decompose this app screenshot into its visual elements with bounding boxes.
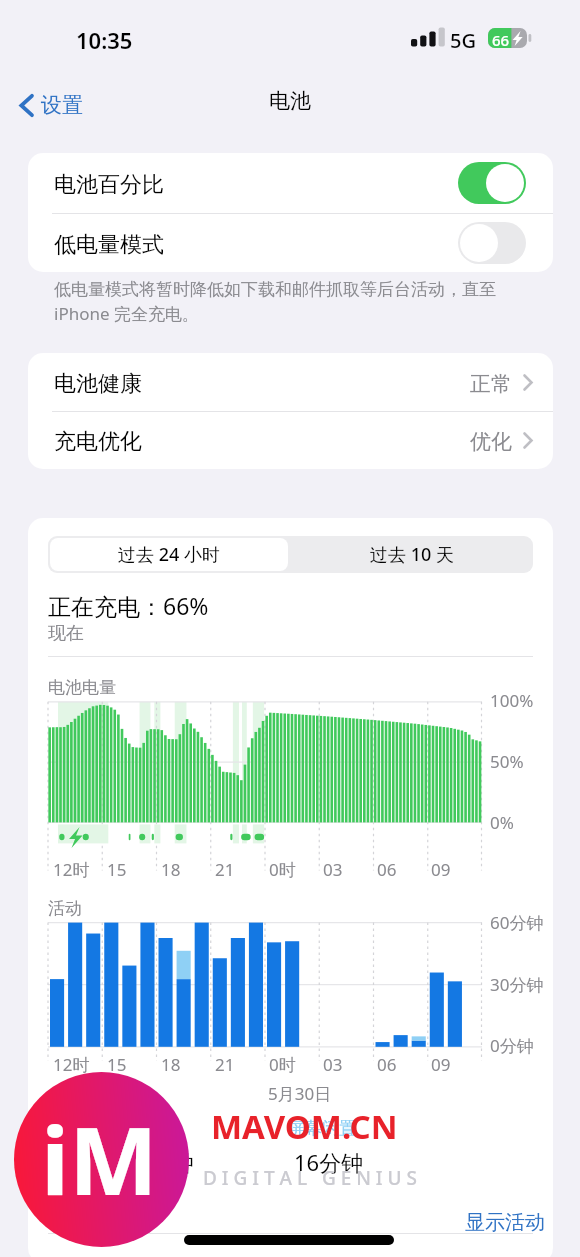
staticText: 屏幕使用 xyxy=(94,1118,162,1139)
staticText: 06 xyxy=(377,858,397,881)
button[interactable]: 过去 10 天 xyxy=(290,536,533,573)
staticText: 电池 xyxy=(269,88,311,114)
staticText: 低电量模式 xyxy=(54,231,164,259)
staticText: 06 xyxy=(377,1053,397,1076)
staticText: 电池健康 xyxy=(54,370,142,398)
staticText: 屏幕闲置 xyxy=(288,1118,356,1139)
button[interactable]: 过去 24 小时 xyxy=(50,538,288,571)
staticText: 09 xyxy=(431,858,451,881)
staticText: 66 xyxy=(492,30,510,50)
staticText: 18 xyxy=(161,858,181,881)
staticText: D I G I T A L G E N I U S xyxy=(203,1165,417,1191)
staticText: 活动 xyxy=(48,898,82,919)
button[interactable]: 低电量模式 xyxy=(28,213,553,272)
staticText: 16分钟 xyxy=(294,1147,364,1177)
staticText: 50% xyxy=(490,750,524,773)
staticText: 21 xyxy=(215,1053,235,1076)
staticText: 03 xyxy=(323,858,343,881)
staticText: 0时 xyxy=(269,1053,296,1076)
staticText: 12时 xyxy=(53,1053,90,1076)
button[interactable]: 电池百分比 xyxy=(28,153,553,212)
staticText: 100% xyxy=(490,689,534,712)
staticText: 正在充电：66% xyxy=(48,590,209,621)
staticText: 0分钟 xyxy=(490,1034,534,1057)
staticText: 5月30日 xyxy=(268,1082,332,1105)
staticText: 1小时28分钟 xyxy=(68,1147,194,1177)
button[interactable]: 显示活动 xyxy=(457,1202,553,1243)
staticText: 充电优化 xyxy=(54,428,142,456)
staticText: 正常 xyxy=(470,371,512,397)
staticText: 电池百分比 xyxy=(54,171,164,199)
staticText: 低电量模式将暂时降低如下载和邮件抓取等后台活动，直至 iPhone 完全充电。 xyxy=(54,279,496,325)
staticText: 15 xyxy=(107,858,127,881)
button[interactable]: 充电优化 xyxy=(28,411,553,469)
staticText: 09 xyxy=(431,1053,451,1076)
staticText: 60分钟 xyxy=(490,911,544,934)
staticText: iM xyxy=(41,1095,158,1223)
staticText: 优化 xyxy=(470,429,512,455)
staticText: 显示活动 xyxy=(465,1210,545,1235)
staticText: 设置 xyxy=(41,92,83,118)
staticText: 30分钟 xyxy=(490,973,544,996)
staticText: 现在 xyxy=(48,622,84,645)
staticText: 过去 24 小时 xyxy=(118,542,220,567)
staticText: 12时 xyxy=(53,858,90,881)
staticText: 15 xyxy=(107,1053,127,1076)
staticText: 0% xyxy=(490,811,514,834)
button[interactable]: 设置 xyxy=(14,86,89,124)
staticText: 18 xyxy=(161,1053,181,1076)
staticText: 过去 10 天 xyxy=(370,542,454,567)
staticText: 5G xyxy=(450,27,476,54)
staticText: 21 xyxy=(215,858,235,881)
staticText: 10:35 xyxy=(76,25,133,55)
staticText: 03 xyxy=(323,1053,343,1076)
button[interactable]: 电池健康 xyxy=(28,353,553,411)
staticText: MAVOM.CN xyxy=(211,1104,398,1149)
staticText: 0时 xyxy=(269,858,296,881)
staticText: 电池电量 xyxy=(48,677,116,698)
